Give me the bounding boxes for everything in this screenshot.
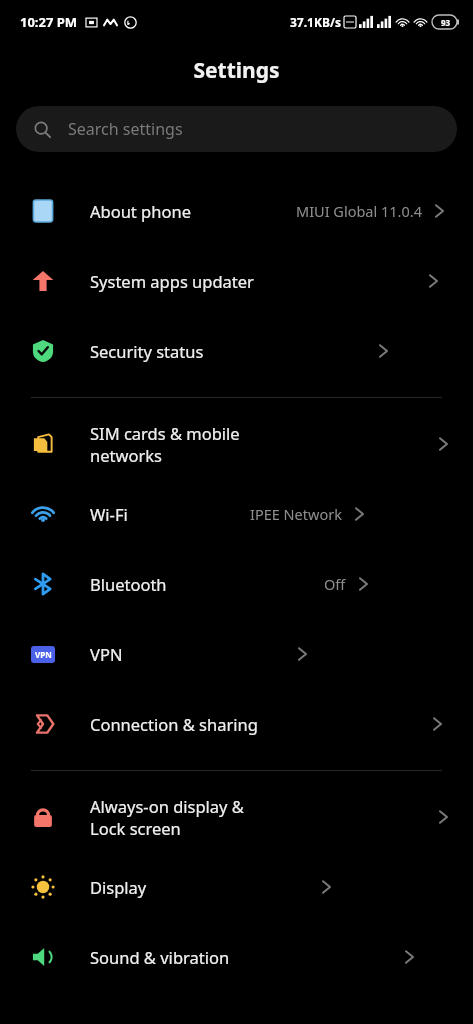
button[interactable]: Wi-Fi	[0, 479, 473, 549]
staticText: Always-on display & Lock screen	[90, 795, 264, 839]
staticText: About phone	[90, 200, 191, 222]
button[interactable]: Sound & vibration	[0, 922, 473, 992]
button[interactable]: VPN	[0, 619, 473, 689]
button[interactable]: System apps updater	[0, 246, 473, 316]
staticText: MIUI Global 11.0.4	[296, 201, 422, 221]
button[interactable]: About phone	[0, 176, 473, 246]
staticText: SIM cards & mobile networks	[90, 422, 264, 466]
staticText: System apps updater	[90, 270, 254, 292]
staticText: 37.1KB/s	[290, 14, 341, 30]
staticText: Connection & sharing	[90, 713, 258, 735]
button[interactable]: Bluetooth	[0, 549, 473, 619]
staticText: VPN	[90, 643, 123, 665]
button[interactable]: Always-on display & Lock screen	[0, 782, 473, 852]
staticText: IPEE Network	[250, 504, 342, 524]
staticText: Sound & vibration	[90, 946, 230, 968]
staticText: Off	[324, 574, 346, 594]
button[interactable]: Security status	[0, 316, 473, 386]
staticText: Display	[90, 876, 147, 898]
button[interactable]: SIM cards & mobile networks	[0, 409, 473, 479]
staticText: 10:27 PM	[20, 13, 78, 31]
button[interactable]: Display	[0, 852, 473, 922]
staticText: 93	[441, 17, 451, 28]
button[interactable]: Search settings	[16, 106, 457, 152]
staticText: Bluetooth	[90, 573, 167, 595]
staticText: Security status	[90, 340, 204, 362]
staticText: Settings	[193, 56, 280, 85]
staticText: Search settings	[68, 118, 183, 140]
button[interactable]: Connection & sharing	[0, 689, 473, 759]
staticText: VPN	[35, 649, 52, 660]
staticText: Wi-Fi	[90, 503, 128, 525]
